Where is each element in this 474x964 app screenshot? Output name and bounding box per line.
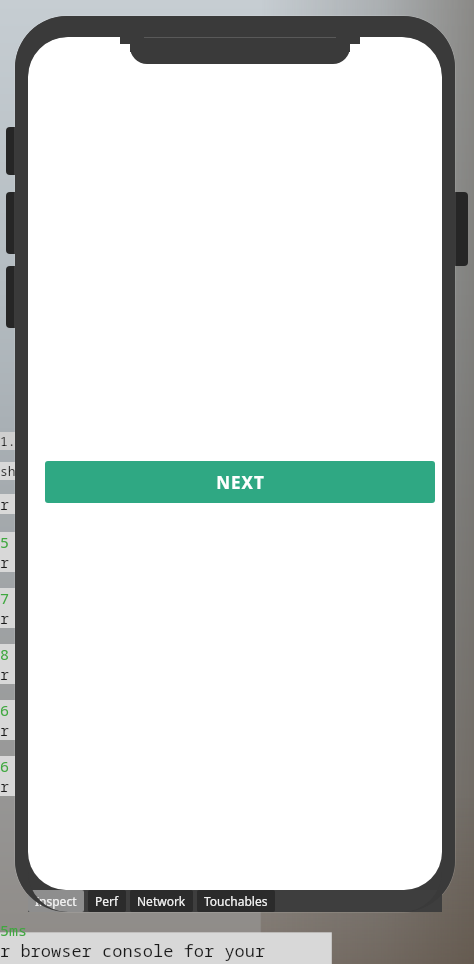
- staticText: 1.: [0, 432, 16, 450]
- staticText: Network: [137, 893, 186, 909]
- staticText: 6: [0, 700, 10, 720]
- staticText: r: [0, 664, 10, 684]
- button[interactable]: Perf: [88, 890, 126, 912]
- staticText: 8: [0, 644, 10, 664]
- button[interactable]: NEXT: [45, 461, 435, 503]
- staticText: r browser console for your: [0, 939, 266, 962]
- staticText: r: [0, 552, 10, 572]
- staticText: Perf: [95, 893, 119, 909]
- staticText: sh: [0, 462, 16, 480]
- staticText: r: [0, 776, 10, 796]
- staticText: Inspect: [35, 893, 77, 909]
- staticText: 5: [0, 532, 10, 552]
- staticText: 7: [0, 588, 10, 608]
- button[interactable]: Touchables: [197, 890, 275, 912]
- staticText: Touchables: [204, 893, 268, 909]
- staticText: r: [0, 494, 10, 514]
- staticText: r: [0, 608, 10, 628]
- button[interactable]: Inspect: [28, 890, 84, 912]
- staticText: r: [0, 720, 10, 740]
- staticText: NEXT: [216, 471, 265, 494]
- staticText: 5ms: [0, 920, 28, 940]
- button[interactable]: Network: [130, 890, 193, 912]
- staticText: 6: [0, 756, 10, 776]
